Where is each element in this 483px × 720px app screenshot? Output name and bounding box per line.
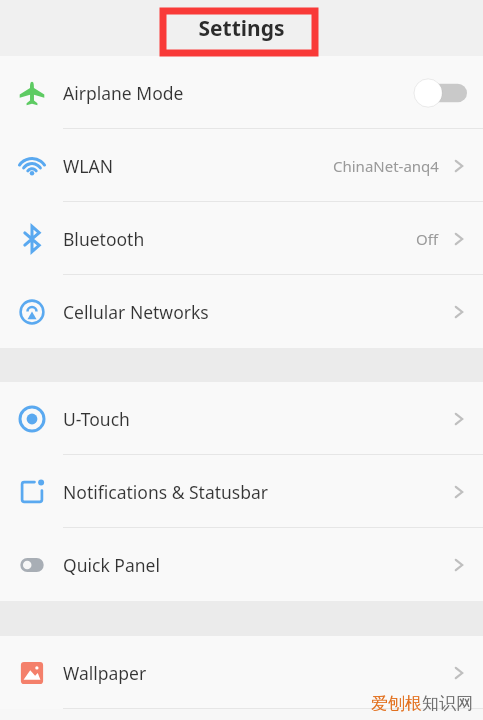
button[interactable]: WLAN xyxy=(0,129,483,202)
button[interactable]: Notifications & Statusbar xyxy=(0,455,483,528)
button[interactable]: Wallpaper xyxy=(0,636,483,709)
staticText: Notifications & Statusbar xyxy=(63,480,269,504)
staticText: U-Touch xyxy=(63,407,130,431)
staticText: Settings xyxy=(198,14,285,43)
staticText: 知识网 xyxy=(422,693,473,714)
staticText: Quick Panel xyxy=(63,553,160,577)
staticText: ChinaNet-anq4 xyxy=(333,156,439,176)
staticText: Bluetooth xyxy=(63,227,145,251)
button[interactable]: Airplane Mode xyxy=(0,56,483,129)
button[interactable]: U-Touch xyxy=(0,382,483,455)
staticText: 爱刨根 xyxy=(371,693,422,714)
button[interactable]: Cellular Networks xyxy=(0,275,483,348)
staticText: WLAN xyxy=(63,154,113,178)
staticText: Off xyxy=(416,229,439,249)
button[interactable]: Quick Panel xyxy=(0,528,483,601)
staticText: Wallpaper xyxy=(63,661,147,685)
button[interactable]: Bluetooth xyxy=(0,202,483,275)
staticText: Cellular Networks xyxy=(63,300,209,324)
staticText: Airplane Mode xyxy=(63,81,184,105)
